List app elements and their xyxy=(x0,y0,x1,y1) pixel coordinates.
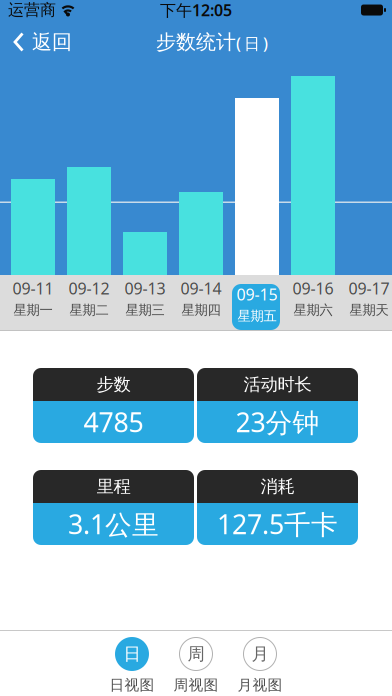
button[interactable]: 日 xyxy=(100,637,164,694)
button[interactable]: 里程 xyxy=(33,470,194,545)
staticText: 09-14 xyxy=(180,278,221,299)
button[interactable]: 周 xyxy=(164,637,228,694)
staticText: 127.5千卡 xyxy=(217,506,338,542)
staticText: 周 xyxy=(187,643,204,665)
staticText: 星期五 xyxy=(237,308,276,324)
button[interactable]: 09-16 xyxy=(285,275,341,321)
button[interactable]: 活动时长 xyxy=(197,368,358,443)
button[interactable]: 步数 xyxy=(33,368,194,443)
staticText: 星期四 xyxy=(181,302,220,318)
staticText: 日 xyxy=(123,643,140,665)
staticText: 09-17 xyxy=(348,278,389,299)
staticText: 星期一 xyxy=(13,302,52,318)
staticText: 4785 xyxy=(83,404,143,440)
staticText: 09-13 xyxy=(124,278,165,299)
staticText: 返回 xyxy=(32,30,72,54)
button[interactable]: 09-14 xyxy=(173,275,229,321)
staticText: 周视图 xyxy=(173,676,218,694)
staticText: 运营商 xyxy=(8,0,56,20)
staticText: 星期天 xyxy=(349,302,388,318)
button[interactable]: 09-15 xyxy=(229,281,285,327)
staticText: 星期三 xyxy=(125,302,164,318)
button[interactable]: 09-13 xyxy=(117,275,173,321)
staticText: 23分钟 xyxy=(235,404,319,440)
staticText: 09-16 xyxy=(292,278,333,299)
button[interactable]: 09-12 xyxy=(61,275,117,321)
button[interactable]: 返回 xyxy=(0,30,72,54)
staticText: 日视图 xyxy=(109,676,154,694)
staticText: 下午12:05 xyxy=(160,0,232,21)
staticText: 消耗 xyxy=(260,476,294,497)
staticText: 星期六 xyxy=(293,302,332,318)
staticText: 09-15 xyxy=(236,284,277,305)
staticText: 步数 xyxy=(96,374,130,395)
staticText: 活动时长 xyxy=(243,374,311,395)
button[interactable]: 09-11 xyxy=(5,275,61,321)
staticText: 09-12 xyxy=(68,278,109,299)
staticText: 09-11 xyxy=(12,278,53,299)
staticText: 3.1公里 xyxy=(68,506,159,542)
staticText: 月 xyxy=(251,643,268,665)
staticText: 步数统计( 日 ) xyxy=(156,30,268,54)
button[interactable]: 09-17 xyxy=(341,275,392,321)
staticText: 月视图 xyxy=(237,676,282,694)
button[interactable]: 消耗 xyxy=(197,470,358,545)
staticText: 星期二 xyxy=(69,302,108,318)
staticText: 里程 xyxy=(96,476,130,497)
button[interactable]: 月 xyxy=(228,637,292,694)
